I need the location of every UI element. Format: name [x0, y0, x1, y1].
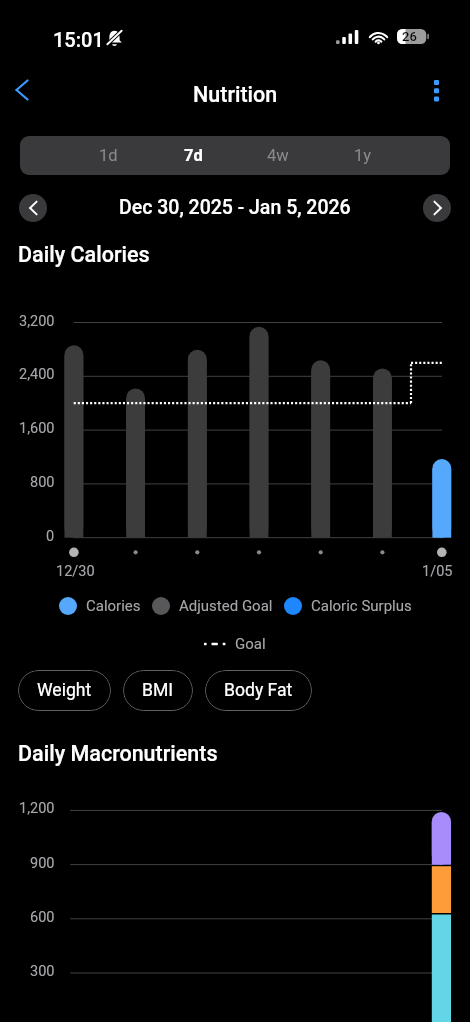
staticText: 2,400: [19, 366, 55, 383]
staticText: Dec 30, 2025 - Jan 5, 2026: [119, 196, 351, 219]
staticText: 7d: [184, 146, 203, 165]
staticText: 1d: [99, 146, 118, 165]
staticText: Goal: [235, 635, 266, 653]
staticText: Adjusted Goal: [179, 597, 273, 615]
staticText: 4w: [267, 146, 289, 165]
staticText: Caloric Surplus: [311, 597, 412, 615]
button[interactable]: Next period: [423, 194, 451, 222]
button[interactable]: 4w: [236, 136, 320, 175]
button[interactable]: 1y: [321, 136, 405, 175]
staticText: BMI: [142, 680, 174, 701]
button[interactable]: Weight: [18, 670, 111, 711]
button[interactable]: Body Fat: [205, 670, 312, 711]
staticText: 1,200: [19, 800, 55, 817]
staticText: 900: [30, 855, 55, 872]
staticText: 800: [30, 474, 55, 491]
staticText: Body Fat: [224, 680, 293, 701]
staticText: 0: [46, 528, 55, 545]
staticText: Nutrition: [193, 82, 278, 107]
staticText: 300: [30, 963, 55, 980]
staticText: Daily Macronutrients: [18, 741, 218, 766]
staticText: 1y: [354, 146, 372, 165]
staticText: 1,600: [19, 420, 55, 437]
staticText: 3,200: [19, 313, 55, 330]
staticText: 12/30: [56, 563, 95, 580]
button[interactable]: 1d: [66, 136, 150, 175]
staticText: 1/05: [422, 563, 453, 580]
staticText: 26: [402, 29, 417, 44]
button[interactable]: Caloric Surplus: [284, 597, 412, 615]
button[interactable]: Adjusted Goal: [152, 597, 273, 615]
button[interactable]: More options: [415, 66, 457, 108]
staticText: Calories: [86, 597, 141, 615]
staticText: Weight: [37, 680, 92, 701]
button[interactable]: Previous period: [19, 194, 47, 222]
button[interactable]: Back: [0, 68, 44, 112]
button[interactable]: 7d: [151, 136, 235, 175]
staticText: 600: [30, 909, 55, 926]
button[interactable]: Calories: [59, 597, 141, 615]
staticText: Daily Calories: [18, 242, 150, 267]
staticText: 15:01: [53, 28, 104, 51]
button[interactable]: BMI: [123, 670, 193, 711]
